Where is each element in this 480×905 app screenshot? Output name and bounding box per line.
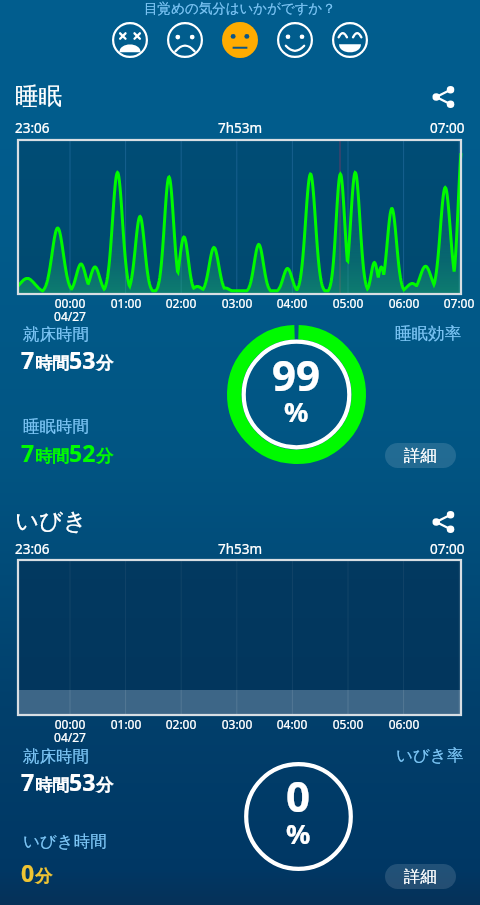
staticText: 00:00: [40, 295, 100, 311]
staticText: いびき: [15, 506, 88, 536]
staticText: 07:00: [430, 119, 465, 137]
staticText: 時間: [35, 353, 69, 374]
staticText: 分: [35, 866, 52, 887]
staticText: 睡眠時間: [23, 416, 89, 437]
staticText: 時間: [35, 775, 69, 796]
staticText: 07:00: [430, 540, 465, 558]
button[interactable]: Share snore: [424, 503, 462, 541]
staticText: 01:00: [96, 295, 156, 311]
staticText: 睡眠: [15, 81, 62, 111]
staticText: 就床時間: [23, 324, 89, 345]
staticText: 07:00: [429, 295, 480, 311]
button[interactable]: mood rating 1: [102, 21, 157, 59]
staticText: 04/27: [40, 308, 100, 324]
staticText: 06:00: [374, 295, 434, 311]
staticText: 0: [21, 857, 35, 888]
staticText: 23:06: [15, 119, 50, 137]
staticText: 06:00: [374, 716, 434, 732]
staticText: 53: [69, 344, 96, 375]
staticText: 23:06: [15, 540, 50, 558]
staticText: 04:00: [262, 716, 322, 732]
staticText: %: [284, 393, 309, 430]
button[interactable]: Share sleep: [424, 78, 462, 116]
staticText: %: [286, 815, 311, 852]
staticText: 就床時間: [23, 746, 89, 767]
staticText: 分: [96, 446, 113, 467]
staticText: 00:00: [40, 716, 100, 732]
staticText: 睡眠効率: [395, 323, 461, 344]
staticText: 05:00: [318, 716, 378, 732]
staticText: 詳細: [404, 866, 437, 887]
staticText: 04:00: [262, 295, 322, 311]
staticText: 分: [96, 353, 113, 374]
staticText: 53: [69, 766, 96, 797]
button[interactable]: Sleep details: [385, 443, 456, 468]
staticText: 03:00: [207, 295, 267, 311]
staticText: 時間: [35, 446, 69, 467]
staticText: 7: [21, 344, 35, 375]
staticText: いびき時間: [23, 831, 107, 852]
staticText: 05:00: [318, 295, 378, 311]
button[interactable]: mood rating 5: [322, 21, 377, 59]
staticText: 02:00: [151, 295, 211, 311]
staticText: 7: [21, 437, 35, 468]
button[interactable]: mood rating 3: [212, 21, 267, 59]
staticText: 7h53m: [218, 540, 263, 558]
staticText: 目覚めの気分はいかがですか？: [144, 0, 336, 17]
staticText: 03:00: [207, 716, 267, 732]
staticText: 01:00: [96, 716, 156, 732]
staticText: 04/27: [40, 729, 100, 745]
button[interactable]: mood rating 4: [267, 21, 322, 59]
staticText: 99: [272, 346, 321, 403]
staticText: 7h53m: [218, 119, 263, 137]
staticText: いびき率: [396, 745, 464, 766]
staticText: 52: [69, 437, 96, 468]
staticText: 02:00: [151, 716, 211, 732]
button[interactable]: mood rating 2: [157, 21, 212, 59]
staticText: 7: [21, 766, 35, 797]
button[interactable]: Snore details: [385, 864, 456, 889]
staticText: 0: [286, 767, 311, 824]
staticText: 分: [96, 775, 113, 796]
staticText: 詳細: [404, 445, 437, 466]
